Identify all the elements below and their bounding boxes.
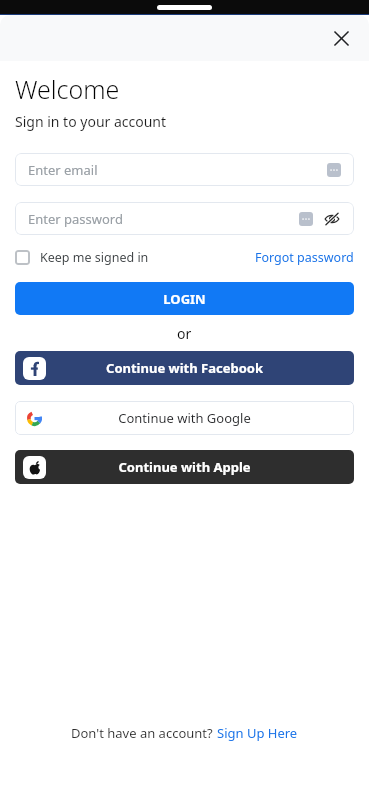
button[interactable]: Keep me signed in — [15, 249, 149, 266]
button[interactable]: Close — [325, 22, 357, 54]
staticText: LOGIN — [163, 290, 206, 308]
staticText: Continue with Apple — [118, 458, 251, 476]
staticText: Welcome — [15, 72, 120, 106]
staticText: Sign Up Here — [217, 724, 298, 742]
staticText: Don't have an account? — [71, 724, 217, 742]
staticText: Continue with Google — [118, 409, 251, 427]
staticText: Enter email — [28, 161, 327, 179]
button[interactable]: Show password — [323, 210, 341, 228]
button[interactable]: Enter password — [15, 202, 354, 235]
button[interactable]: Continue with Google — [15, 401, 354, 435]
button[interactable]: Forgot password — [255, 249, 354, 266]
button[interactable]: Autofill — [327, 163, 341, 177]
button[interactable]: Continue with Apple — [15, 450, 354, 484]
button[interactable]: Sign Up Here — [217, 724, 298, 742]
staticText: Enter password — [28, 210, 299, 228]
button[interactable]: Enter email — [15, 153, 354, 186]
staticText: Sign in to your account — [15, 112, 167, 131]
staticText: or — [177, 324, 192, 343]
staticText: Keep me signed in — [40, 249, 149, 266]
button[interactable]: Autofill — [299, 212, 313, 226]
staticText: Forgot password — [255, 249, 354, 266]
button[interactable]: LOGIN — [15, 282, 354, 315]
button[interactable]: Continue with Facebook — [15, 351, 354, 385]
staticText: Continue with Facebook — [106, 359, 263, 377]
